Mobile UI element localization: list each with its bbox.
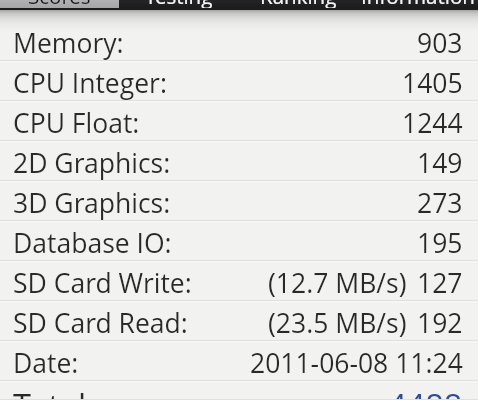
button[interactable]: SD Card Read: [0,301,478,341]
staticText: 3D Graphics: [13,185,171,221]
button[interactable]: Total: [0,381,478,400]
button[interactable]: CPU Float: [0,101,478,141]
button[interactable]: Information [358,0,478,8]
staticText: 2D Graphics: [13,145,171,181]
staticText: 1405 [402,65,463,101]
button[interactable]: Memory: [0,21,478,61]
staticText: 4488 [388,383,463,400]
staticText: CPU Integer: [13,65,167,101]
staticText: Information [361,0,475,8]
staticText: 903 [417,25,463,61]
staticText: Memory: [13,25,124,61]
staticText: SD Card Read: [13,305,188,341]
staticText: 273 [417,185,463,221]
staticText: 149 [417,145,463,181]
staticText: (12.7 MB/s) [268,265,407,301]
button[interactable]: SD Card Write: [0,261,478,301]
staticText: 2011-06-08 11:24 [250,345,463,381]
button[interactable]: Ranking [238,0,358,8]
staticText: Testing [145,0,213,8]
button[interactable]: Scores [0,0,119,8]
button[interactable]: Testing [119,0,238,8]
staticText: 192 [417,305,463,341]
button[interactable]: CPU Integer: [0,61,478,101]
staticText: Ranking [260,0,337,8]
staticText: (23.5 MB/s) [268,305,407,341]
staticText: Scores [28,0,91,8]
staticText: 127 [417,265,463,301]
staticText: Date: [13,345,79,381]
button[interactable]: Date: [0,341,478,381]
staticText: CPU Float: [13,105,140,141]
button[interactable]: 2D Graphics: [0,141,478,181]
staticText: Database IO: [13,225,172,261]
staticText: 1244 [402,105,463,141]
staticText: Total: [13,383,95,400]
button[interactable]: Database IO: [0,221,478,261]
staticText: 195 [417,225,463,261]
staticText: SD Card Write: [13,265,192,301]
button[interactable]: 3D Graphics: [0,181,478,221]
